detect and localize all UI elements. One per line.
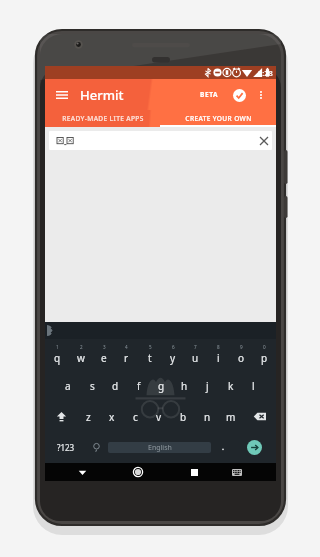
staticText: x — [109, 410, 115, 424]
staticText: 5 — [149, 344, 152, 350]
button[interactable]: 3 — [92, 339, 115, 370]
button[interactable]: 2 — [69, 339, 92, 370]
staticText: 6 — [172, 344, 175, 350]
button[interactable]: m — [219, 401, 243, 432]
button[interactable]: Recent apps — [180, 463, 208, 481]
button[interactable]: n — [195, 401, 219, 432]
staticText: English — [148, 443, 172, 453]
staticText: 7 — [194, 344, 197, 350]
staticText: k — [228, 379, 234, 393]
staticText: CREATE YOUR OWN — [185, 114, 252, 123]
staticText: l — [252, 379, 255, 393]
button[interactable]: Back — [69, 463, 96, 481]
button[interactable]: 7 — [184, 339, 207, 370]
button[interactable]: h — [173, 370, 196, 401]
button[interactable]: j — [196, 370, 219, 401]
staticText: 4 — [125, 344, 128, 350]
button[interactable]: Clear text — [256, 133, 272, 149]
button[interactable]: Emoji and comma — [84, 432, 108, 463]
button[interactable]: l — [242, 370, 265, 401]
staticText: y — [170, 351, 176, 365]
button[interactable]: 1 — [45, 339, 69, 370]
button[interactable]: z — [77, 401, 100, 432]
staticText: h — [181, 379, 188, 393]
button[interactable]: English — [108, 442, 211, 453]
button[interactable]: Open navigation menu — [51, 84, 73, 106]
button[interactable]: 8 — [207, 339, 230, 370]
button[interactable]: f — [127, 370, 150, 401]
button[interactable]: 4 — [115, 339, 138, 370]
button[interactable]: v — [147, 401, 171, 432]
staticText: BETA — [200, 90, 219, 99]
staticText: z — [86, 410, 91, 424]
staticText: 3 — [103, 344, 106, 350]
button[interactable]: More options — [252, 86, 270, 104]
staticText: q — [54, 351, 61, 365]
staticText: Hermit — [80, 86, 124, 104]
button[interactable]: a — [56, 370, 80, 401]
staticText: f — [137, 379, 141, 393]
staticText: 0 — [263, 344, 266, 350]
button[interactable]: Period — [211, 432, 235, 463]
button[interactable]: k — [219, 370, 242, 401]
staticText: e — [101, 351, 107, 365]
staticText: o — [238, 351, 245, 365]
staticText: p — [261, 351, 268, 365]
staticText: n — [204, 410, 211, 424]
button[interactable]: 9 — [230, 339, 253, 370]
staticText: g — [158, 379, 165, 393]
staticText: 9 — [240, 344, 243, 350]
button[interactable]: g — [150, 370, 173, 401]
staticText: s — [90, 379, 95, 393]
staticText: 9:28 — [258, 68, 273, 78]
button[interactable]: Switch keyboard — [223, 463, 251, 481]
staticText: c — [133, 410, 138, 424]
button[interactable]: BETA — [197, 88, 222, 101]
staticText: v — [156, 410, 162, 424]
button[interactable]: x — [100, 401, 123, 432]
staticText: j — [206, 379, 209, 393]
staticText: t — [148, 351, 152, 365]
staticText: d — [112, 379, 119, 393]
button[interactable]: ?123 — [47, 432, 84, 463]
button[interactable]: READY-MADE LITE APPS — [45, 110, 160, 127]
button[interactable]: Enter — [235, 432, 274, 463]
button[interactable]: Clear text — [49, 131, 272, 150]
button[interactable]: b — [171, 401, 195, 432]
button[interactable]: 5 — [138, 339, 161, 370]
staticText: r — [124, 351, 129, 365]
button[interactable]: c — [123, 401, 147, 432]
button[interactable]: Backspace — [243, 401, 276, 432]
button[interactable]: s — [80, 370, 104, 401]
button[interactable]: Verified — [229, 85, 249, 105]
button[interactable]: Expand suggestions — [47, 325, 58, 336]
staticText: m — [226, 410, 236, 424]
button[interactable]: Shift — [45, 401, 77, 432]
staticText: i — [217, 351, 220, 365]
button[interactable]: 0 — [253, 339, 276, 370]
button[interactable]: 6 — [161, 339, 184, 370]
staticText: u — [192, 351, 199, 365]
staticText: READY-MADE LITE APPS — [62, 114, 144, 123]
button[interactable]: CREATE YOUR OWN — [160, 110, 276, 127]
button[interactable]: Home — [124, 463, 152, 481]
staticText: b — [180, 410, 187, 424]
staticText: 8 — [217, 344, 220, 350]
staticText: a — [65, 379, 71, 393]
staticText: 1 — [56, 344, 59, 350]
staticText: ?123 — [57, 442, 75, 453]
staticText: w — [77, 351, 85, 365]
button[interactable]: d — [104, 370, 127, 401]
staticText: 2 — [80, 344, 83, 350]
